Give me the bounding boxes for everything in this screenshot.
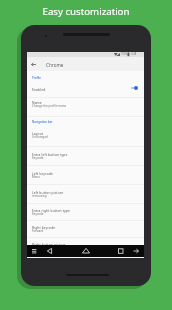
button[interactable]: Name — [27, 95, 144, 117]
staticText: Menu — [32, 175, 40, 179]
button[interactable]: Right keycode — [27, 220, 144, 238]
staticText: Easy customization — [0, 5, 172, 18]
staticText: Chrome — [46, 62, 64, 68]
staticText: Unchanged — [32, 135, 48, 139]
button[interactable]: Home — [79, 245, 93, 257]
button[interactable]: Left keycode — [27, 166, 144, 185]
staticText: 100% — [121, 52, 128, 56]
button[interactable]: Forward — [128, 245, 142, 257]
staticText: Keycode — [32, 212, 44, 216]
staticText: Layout — [32, 131, 44, 135]
button[interactable]: Enabled — [27, 82, 144, 98]
staticText: Extra left button type — [32, 152, 68, 156]
button[interactable]: Extra left button type — [27, 147, 144, 166]
staticText: Keycode — [32, 156, 44, 160]
staticText: Enabled — [32, 87, 46, 91]
staticText: Left button picture — [32, 190, 64, 194]
button[interactable]: Back — [43, 245, 57, 257]
staticText: Change the profile name — [32, 104, 67, 108]
staticText: Navigation bar — [32, 120, 53, 124]
staticText: 3:48 — [131, 52, 137, 56]
button[interactable]: Extra right button type — [27, 203, 144, 221]
button[interactable]: Right button picture — [27, 237, 144, 245]
button[interactable]: Left button picture — [27, 185, 144, 203]
staticText: Left keycode — [32, 171, 53, 175]
staticText: Right button picture — [32, 242, 66, 246]
staticText: Forward — [32, 246, 44, 250]
button[interactable]: Recent apps — [113, 245, 127, 257]
staticText: Name — [32, 100, 42, 104]
button[interactable]: Menu — [28, 245, 42, 257]
staticText: mmsusing — [32, 194, 47, 198]
button[interactable]: Layout — [27, 126, 144, 147]
button[interactable]: Back — [30, 61, 37, 68]
staticText: Extra right button type — [32, 208, 70, 212]
staticText: Right keycode — [32, 225, 56, 229]
staticText: Profile — [32, 76, 41, 80]
staticText: Forward — [32, 229, 44, 233]
